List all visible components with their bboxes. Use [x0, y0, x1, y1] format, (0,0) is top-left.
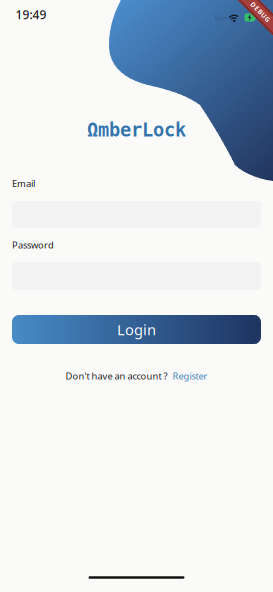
staticText: DEBUG: [248, 8, 273, 16]
button[interactable]: Login: [12, 315, 261, 344]
staticText: Register: [172, 370, 207, 382]
staticText: Email: [12, 177, 35, 190]
staticText: ΩmberLock: [87, 119, 186, 141]
staticText: 19:49: [15, 6, 46, 22]
staticText: 5G+: [214, 14, 227, 22]
staticText: Don't have an account ?: [65, 370, 167, 382]
staticText: Login: [117, 320, 156, 339]
staticText: Password: [12, 239, 54, 251]
button[interactable]: Register: [172, 370, 207, 382]
